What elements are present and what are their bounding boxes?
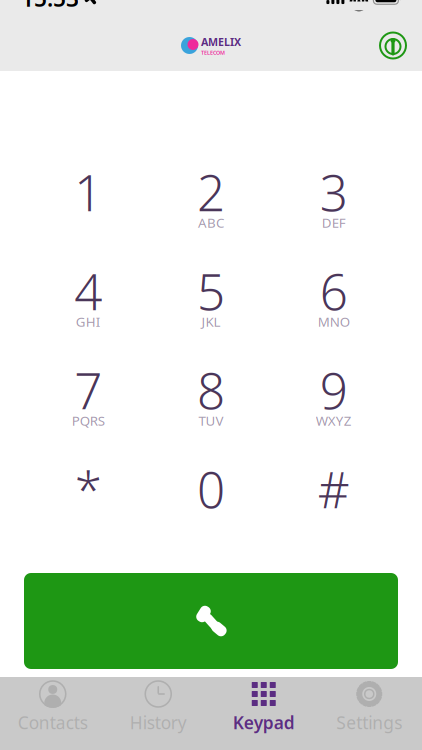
staticText: ABC (198, 214, 224, 231)
button[interactable]: Keypad (211, 681, 316, 733)
button[interactable]: History (105, 681, 211, 733)
button[interactable]: 7 (27, 349, 150, 448)
button[interactable]: 5 (150, 250, 272, 349)
staticText: TUV (198, 412, 223, 429)
staticText: 9 (320, 357, 348, 423)
staticText: DEF (322, 214, 346, 231)
button[interactable]: 2 (150, 151, 272, 250)
staticText: GHI (76, 313, 101, 330)
staticText: AMELIX (201, 35, 241, 49)
staticText: PQRS (72, 412, 105, 429)
button[interactable]: # (272, 448, 395, 547)
staticText: WXYZ (316, 412, 352, 429)
staticText: 1 (74, 159, 102, 225)
button[interactable]: 3 (272, 151, 395, 250)
staticText: 8 (197, 357, 225, 423)
staticText: Contacts (18, 711, 88, 734)
button[interactable]: Call (24, 573, 398, 669)
staticText: 4 (74, 258, 102, 324)
staticText: 0 (197, 456, 225, 522)
button[interactable]: 0 (150, 448, 272, 547)
staticText: 15:53 (21, 0, 79, 13)
staticText: MNO (318, 313, 350, 330)
staticText: TELECOM (201, 49, 225, 56)
staticText: 3 (320, 159, 348, 225)
staticText: 7 (74, 357, 102, 423)
button[interactable]: 6 (272, 250, 395, 349)
staticText: Settings (336, 711, 402, 734)
button[interactable]: Network status (378, 30, 408, 60)
button[interactable]: Contacts (0, 681, 105, 733)
staticText: 2 (197, 159, 225, 225)
staticText: * (75, 456, 102, 522)
staticText: JKL (201, 313, 220, 330)
button[interactable]: 4 (27, 250, 150, 349)
button[interactable]: Settings (316, 681, 422, 733)
staticText: # (318, 456, 350, 522)
button[interactable]: * (27, 448, 150, 547)
staticText: Keypad (233, 711, 295, 734)
staticText: 5 (197, 258, 225, 324)
button[interactable]: 1 (27, 151, 150, 250)
staticText: 6 (320, 258, 348, 324)
button[interactable]: 9 (272, 349, 395, 448)
staticText: History (130, 711, 187, 734)
button[interactable]: 8 (150, 349, 272, 448)
